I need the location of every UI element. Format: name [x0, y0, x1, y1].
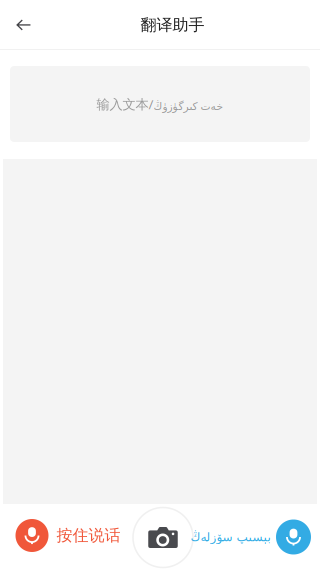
- button[interactable]: Camera: [132, 506, 194, 568]
- button[interactable]: 输入文本/خەت كىرگۈزۈڭ: [10, 66, 310, 142]
- button[interactable]: Back: [0, 0, 48, 50]
- button[interactable]: بېسىپ سۆزلەڭ: [160, 513, 320, 561]
- staticText: 输入文本/خەت كىرگۈزۈڭ: [96, 95, 223, 113]
- staticText: بېسىپ سۆزلەڭ: [190, 530, 270, 544]
- staticText: 翻译助手: [140, 15, 204, 35]
- button[interactable]: 按住说话: [0, 511, 130, 559]
- staticText: 按住说话: [56, 525, 120, 546]
